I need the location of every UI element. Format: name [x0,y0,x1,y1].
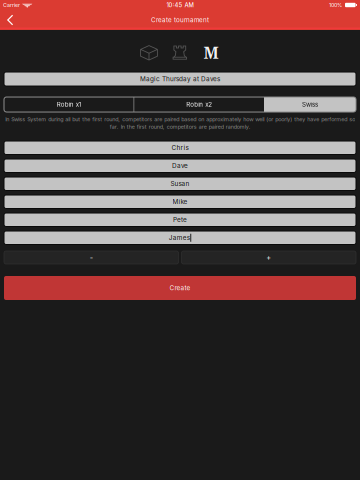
staticText: Create [169,284,190,292]
staticText: Create tournament [151,16,209,24]
button[interactable]: Create [4,276,356,300]
button[interactable]: Add player [181,251,356,264]
button[interactable]: Robin x1 [4,97,133,112]
staticText: In Swiss System during all but the first… [5,116,355,130]
button[interactable]: Chess tournament [164,44,195,61]
staticText: 10:45 AM [166,1,193,9]
staticText: Susan [170,180,189,188]
staticText: James [169,234,190,242]
button[interactable]: Susan [4,177,356,190]
staticText: M [203,42,218,63]
button[interactable]: Robin x2 [134,97,264,112]
staticText: Mike [172,198,187,206]
button[interactable]: Pete [4,213,356,226]
staticText: + [266,253,271,262]
staticText: 100% [329,2,342,8]
button[interactable]: James [4,231,356,244]
staticText: Swiss [302,101,318,108]
button[interactable]: Swiss [264,97,356,112]
button[interactable]: Dice tournament [133,44,164,61]
button[interactable]: Chris [4,141,356,154]
staticText: - [90,253,93,262]
button[interactable]: Magic tournament [195,44,226,61]
staticText: Pete [173,216,187,224]
button[interactable]: Mike [4,195,356,208]
button[interactable]: Back [0,10,23,30]
staticText: Magic Thursday at Daves [140,75,220,83]
staticText: Carrier [3,2,20,8]
button[interactable]: Magic Thursday at Daves [4,72,356,86]
staticText: Chris [171,144,188,152]
staticText: Dave [172,162,188,170]
button[interactable]: Remove player [4,251,178,264]
staticText: Robin x2 [186,101,212,108]
staticText: Robin x1 [57,101,81,108]
button[interactable]: Dave [4,159,356,172]
